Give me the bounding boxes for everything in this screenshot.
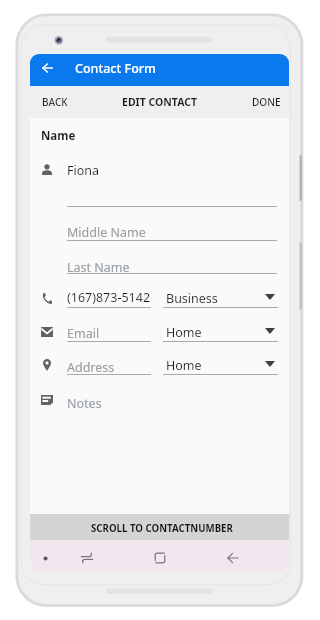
staticText: (167)873-5142 <box>67 289 151 306</box>
staticText: Business <box>166 290 218 307</box>
staticText: Last Name <box>67 259 130 276</box>
staticText: DONE <box>252 95 281 109</box>
button[interactable]: DONE <box>247 88 287 116</box>
staticText: Name <box>41 128 76 144</box>
staticText: Notes <box>67 395 102 412</box>
staticText: EDIT CONTACT <box>122 95 197 109</box>
staticText: Address <box>67 359 115 376</box>
button[interactable]: BACK <box>36 88 76 116</box>
staticText: Home <box>166 324 202 341</box>
staticText: SCROLL TO CONTACTNUMBER <box>91 522 233 535</box>
staticText: Fiona <box>67 162 100 179</box>
button[interactable]: Navigate up <box>37 58 57 78</box>
staticText: BACK <box>42 95 68 109</box>
staticText: Email <box>67 325 100 342</box>
staticText: Home <box>166 357 202 374</box>
staticText: Contact Form <box>75 60 156 77</box>
button[interactable]: Assistant <box>30 543 60 571</box>
button[interactable]: Recent apps <box>145 543 175 571</box>
button[interactable]: Back <box>218 543 248 571</box>
button[interactable]: Switch apps <box>72 543 102 571</box>
button[interactable]: SCROLL TO CONTACTNUMBER <box>30 514 289 540</box>
staticText: Middle Name <box>67 224 146 241</box>
